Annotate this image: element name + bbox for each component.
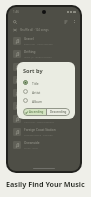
staticText: Artist bbox=[32, 90, 41, 94]
staticText: Miller Jo · Bright Echoes bbox=[24, 55, 52, 58]
button[interactable]: Sort bbox=[64, 20, 68, 24]
staticText: Anwen Rhys · Still Hours bbox=[24, 107, 53, 110]
staticText: Billie Lost · Neon Garden bbox=[24, 42, 53, 45]
button[interactable]: Paper Lanterns bbox=[8, 73, 80, 86]
staticText: Album bbox=[32, 99, 43, 103]
staticText: Gravel bbox=[24, 37, 34, 41]
staticText: Sort by bbox=[23, 67, 43, 75]
button[interactable]: Pale Blue bbox=[8, 99, 80, 112]
staticText: Ascending bbox=[29, 110, 44, 114]
staticText: Nilo Cruz · Warm Evening bbox=[24, 120, 54, 123]
button[interactable]: Halogen bbox=[8, 60, 80, 73]
button[interactable]: Album bbox=[23, 96, 70, 105]
staticText: Midnight Drive bbox=[24, 89, 47, 93]
button[interactable]: Title bbox=[23, 78, 70, 87]
button[interactable]: Gravel bbox=[8, 34, 80, 47]
button[interactable]: Shuffle all · 124 songs bbox=[8, 26, 80, 34]
button[interactable]: More options bbox=[72, 20, 76, 24]
button[interactable]: Heavy Lift bbox=[8, 112, 80, 125]
staticText: Kove Hart · Slow Burn bbox=[24, 81, 50, 84]
staticText: Oceanside bbox=[24, 141, 40, 145]
staticText: Chalk · Drift bbox=[24, 146, 38, 149]
staticText: Shuffle all · 124 songs bbox=[20, 28, 49, 32]
button[interactable]: Search bbox=[12, 19, 17, 24]
staticText: Descending bbox=[50, 110, 67, 114]
staticText: Heavy Lift bbox=[24, 115, 39, 119]
button[interactable]: Midnight Drive bbox=[8, 86, 80, 99]
staticText: Drifting bbox=[24, 50, 36, 54]
staticText: Title bbox=[32, 81, 39, 85]
staticText: Easily Find Your Music bbox=[6, 179, 85, 189]
button[interactable]: Drifting bbox=[8, 47, 80, 60]
button[interactable]: Foreign Coast Station bbox=[8, 125, 80, 138]
button[interactable]: Descending bbox=[47, 108, 70, 116]
button[interactable]: Ascending bbox=[23, 108, 46, 116]
staticText: Pale Blue bbox=[24, 102, 38, 106]
staticText: Foreign Coast Station bbox=[24, 128, 56, 132]
staticText: Orange Palace · Passage bbox=[24, 133, 53, 136]
button[interactable]: Artist bbox=[23, 87, 70, 96]
button[interactable]: Oceanside bbox=[8, 138, 80, 151]
staticText: Tess Vane · Afterlight bbox=[24, 68, 49, 71]
staticText: 1:46 bbox=[13, 10, 20, 14]
